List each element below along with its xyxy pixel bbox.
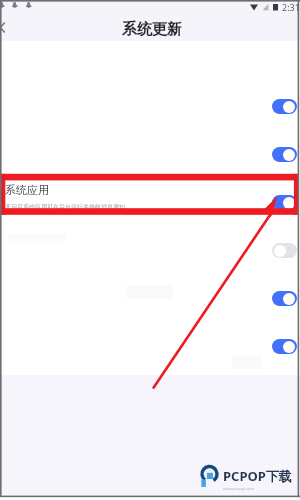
button[interactable]: Switch on — [272, 291, 297, 306]
button[interactable]: Switch on — [0, 322, 300, 370]
button[interactable]: Switch on — [0, 130, 300, 178]
button[interactable]: Switch on — [272, 339, 297, 354]
button[interactable]: Back — [0, 17, 14, 39]
staticText: 系统更新 — [122, 20, 182, 39]
staticText: 开启后系统应用可在后台运行并接收消息通知 — [5, 203, 125, 211]
button[interactable]: Switch on — [272, 147, 297, 162]
staticText: 2:31 — [282, 1, 300, 13]
staticText: 系统应用 — [5, 183, 49, 197]
button[interactable]: Switch on — [0, 82, 300, 130]
button[interactable]: Switch on — [272, 99, 297, 114]
button[interactable]: Switch off — [0, 226, 300, 274]
staticText: www.pcpop.com — [223, 486, 255, 491]
button[interactable]: Switch on — [272, 195, 297, 210]
button[interactable]: Switch on — [0, 274, 300, 322]
button[interactable]: 系统应用 — [0, 178, 300, 226]
button[interactable]: Switch off — [272, 243, 297, 258]
staticText: PCPOP下载 — [223, 467, 292, 485]
